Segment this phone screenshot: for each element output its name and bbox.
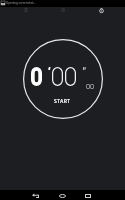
button[interactable]: Home (56, 193, 68, 198)
button[interactable]: Recent apps (82, 193, 94, 198)
button[interactable]: Start stopwatch (23, 39, 103, 119)
button[interactable]: Timer (44, 4, 82, 16)
button[interactable]: Stopwatch (82, 4, 120, 16)
staticText: Opening screenshot… (6, 1, 36, 5)
button[interactable]: Alarms (7, 4, 45, 16)
staticText: 00 (86, 82, 94, 92)
button[interactable]: Back (29, 193, 41, 198)
staticText: START (54, 98, 71, 105)
